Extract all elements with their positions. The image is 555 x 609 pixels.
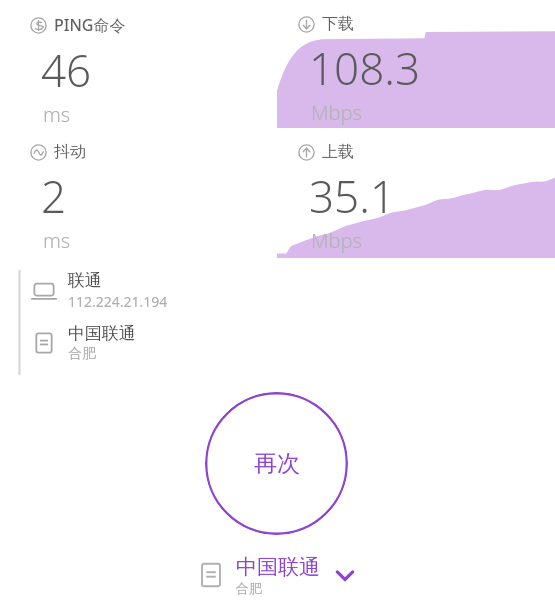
button[interactable]: 中国联通 [0,546,555,604]
staticText: 抖动 [54,142,86,162]
staticText: 46 [41,40,92,100]
staticText: 112.224.21.194 [68,292,168,311]
staticText: 2 [41,166,67,226]
staticText: 合肥 [68,345,96,363]
staticText: 下载 [322,14,354,34]
staticText: 再次 [254,449,300,478]
staticText: Mbps [311,99,362,126]
staticText: 中国联通 [68,323,136,344]
staticText: 35.1 [309,166,396,226]
staticText: 108.3 [309,38,421,98]
staticText: PING命令 [54,14,126,36]
button[interactable]: 再次 [205,392,348,535]
other: Change server [332,562,358,588]
staticText: 中国联通 [236,554,320,580]
staticText: ms [43,101,71,128]
staticText: 上载 [322,142,354,162]
staticText: 合肥 [236,580,262,596]
staticText: ms [43,227,71,254]
staticText: Mbps [311,227,362,254]
staticText: 联通 [68,270,102,291]
